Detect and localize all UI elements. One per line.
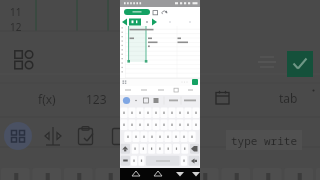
staticText: 12 — [10, 20, 22, 34]
staticText: 123 — [86, 91, 107, 107]
button[interactable]: Shapes — [14, 50, 34, 70]
button[interactable]: Accept — [287, 51, 313, 77]
button[interactable]: Table — [4, 122, 32, 150]
button[interactable]: Accept formula — [192, 79, 198, 85]
button[interactable]: Undo — [161, 9, 168, 16]
button[interactable]: Align center — [43, 126, 63, 146]
button[interactable]: Notes — [111, 126, 131, 146]
button[interactable]: type write — [226, 130, 302, 150]
staticText: 11 — [10, 5, 22, 19]
staticText: type write — [231, 133, 297, 148]
button[interactable]: Date — [215, 90, 230, 105]
button[interactable]: Present — [152, 9, 159, 16]
staticText: tab — [279, 90, 298, 106]
button[interactable] — [124, 9, 150, 15]
staticText: f(x) — [38, 91, 56, 107]
button[interactable]: Paste special — [77, 126, 97, 146]
